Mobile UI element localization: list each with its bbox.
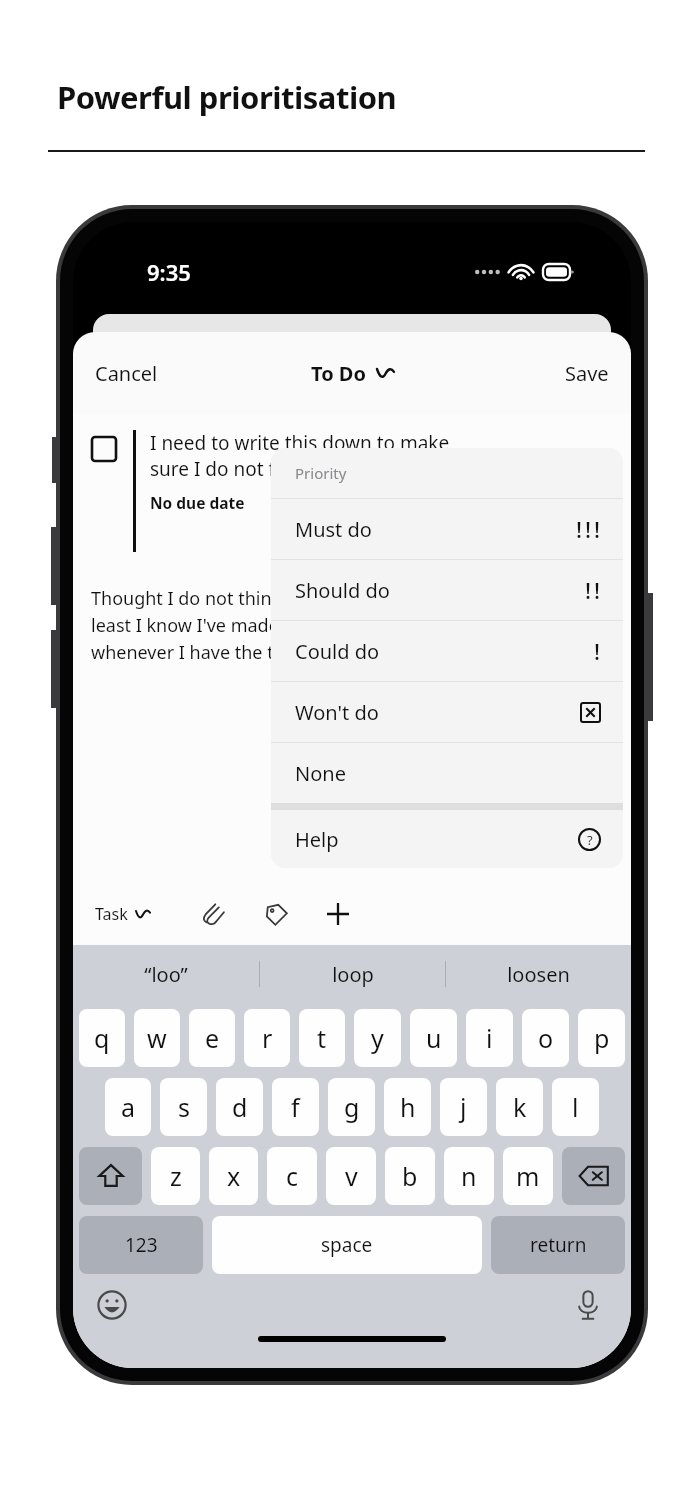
button[interactable]: Shift [79, 1147, 142, 1205]
button[interactable]: p [578, 1009, 625, 1067]
button[interactable]: None [271, 743, 623, 803]
staticText: loop [332, 961, 374, 988]
button[interactable]: j [440, 1078, 487, 1136]
staticText: ! [594, 636, 601, 666]
staticText: return [530, 1232, 587, 1258]
button[interactable]: loop [260, 945, 445, 1003]
button[interactable]: Help [271, 810, 623, 868]
button[interactable]: x [209, 1147, 258, 1205]
staticText: ! [576, 514, 583, 544]
staticText: s [178, 1090, 190, 1124]
button[interactable]: return [491, 1216, 625, 1274]
button[interactable]: m [503, 1147, 553, 1205]
button[interactable]: l [552, 1078, 599, 1136]
staticText: i [486, 1021, 493, 1055]
staticText: space [321, 1232, 373, 1258]
button[interactable]: Save [557, 354, 617, 393]
button[interactable]: Attach file [194, 894, 234, 934]
staticText: No due date [150, 492, 245, 513]
button[interactable]: h [384, 1078, 431, 1136]
staticText: Must do [295, 516, 372, 543]
staticText: loosen [507, 961, 570, 988]
staticText: 9:35 [147, 257, 191, 287]
staticText: ! [594, 575, 601, 605]
staticText: k [513, 1090, 527, 1124]
staticText: None [295, 760, 346, 787]
button[interactable]: g [328, 1078, 375, 1136]
button[interactable]: s [160, 1078, 207, 1136]
button[interactable]: To Do [303, 354, 402, 393]
button[interactable]: Emoji [95, 1288, 129, 1322]
button[interactable]: i [466, 1009, 513, 1067]
staticText: Cancel [95, 360, 158, 387]
button[interactable]: 123 [79, 1216, 203, 1274]
button[interactable]: Should do [271, 560, 623, 620]
staticText: w [147, 1021, 167, 1055]
staticText: Help [295, 826, 339, 853]
staticText: z [170, 1159, 182, 1193]
staticText: m [516, 1159, 540, 1193]
staticText: n [461, 1159, 477, 1193]
button[interactable]: Cancel [87, 354, 166, 393]
staticText: p [594, 1021, 610, 1055]
button[interactable]: Must do [271, 499, 623, 559]
staticText: 123 [125, 1232, 158, 1258]
staticText: Powerful prioritisation [57, 76, 397, 118]
button[interactable]: o [522, 1009, 569, 1067]
button[interactable]: loosen [446, 945, 631, 1003]
staticText: j [460, 1090, 467, 1124]
staticText: I need to write this down to make sure I… [150, 430, 450, 482]
button[interactable]: Task [91, 899, 154, 929]
staticText: h [400, 1090, 416, 1124]
button[interactable]: Add [318, 894, 358, 934]
button[interactable]: n [444, 1147, 494, 1205]
staticText: Won't do [295, 699, 379, 726]
button[interactable]: r [244, 1009, 290, 1067]
staticText: d [232, 1090, 248, 1124]
button[interactable]: q [79, 1009, 125, 1067]
button[interactable]: Complete task [91, 436, 117, 462]
staticText: Should do [295, 577, 390, 604]
button[interactable]: t [299, 1009, 345, 1067]
button[interactable]: Add tag [256, 894, 296, 934]
button[interactable]: u [410, 1009, 457, 1067]
staticText: u [426, 1021, 442, 1055]
staticText: Could do [295, 638, 380, 665]
staticText: r [262, 1021, 273, 1055]
button[interactable]: y [354, 1009, 401, 1067]
staticText: t [317, 1021, 327, 1055]
button[interactable]: z [151, 1147, 200, 1205]
button[interactable]: w [134, 1009, 180, 1067]
staticText: e [205, 1021, 220, 1055]
staticText: o [538, 1021, 554, 1055]
staticText: g [344, 1090, 360, 1124]
staticText: Thought I do not think this is important… [91, 586, 451, 664]
button[interactable]: f [272, 1078, 319, 1136]
staticText: c [286, 1159, 299, 1193]
staticText: q [94, 1021, 110, 1055]
staticText: f [291, 1090, 300, 1124]
button[interactable]: b [385, 1147, 435, 1205]
button[interactable]: a [105, 1078, 151, 1136]
button[interactable]: Won't do [271, 682, 623, 742]
button[interactable]: space [212, 1216, 482, 1274]
staticText: To Do [311, 360, 366, 387]
button[interactable]: Dictation [571, 1288, 605, 1322]
button[interactable]: “loo” [73, 945, 259, 1003]
staticText: ! [585, 575, 592, 605]
staticText: y [371, 1021, 384, 1055]
staticText: Task [95, 903, 128, 925]
button[interactable]: Backspace [562, 1147, 625, 1205]
staticText: ! [585, 514, 592, 544]
button[interactable]: v [326, 1147, 376, 1205]
button[interactable]: e [189, 1009, 235, 1067]
staticText: b [402, 1159, 418, 1193]
staticText: Priority [295, 463, 347, 483]
staticText: x [227, 1159, 241, 1193]
button[interactable]: Could do [271, 621, 623, 681]
button[interactable]: d [216, 1078, 263, 1136]
staticText: Save [565, 360, 609, 387]
button[interactable]: k [496, 1078, 543, 1136]
staticText: “loo” [144, 961, 188, 988]
button[interactable]: c [267, 1147, 317, 1205]
